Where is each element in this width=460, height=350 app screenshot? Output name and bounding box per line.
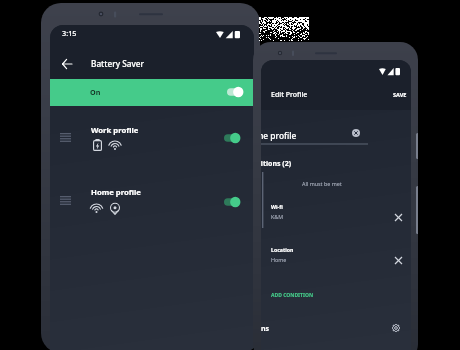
button[interactable]: Remove Wi-fi — [391, 210, 405, 224]
staticText: Actions — [261, 324, 270, 334]
staticText: Wi-fi — [271, 203, 283, 210]
button[interactable]: Back — [57, 54, 76, 73]
staticText: K&M — [271, 213, 284, 220]
button[interactable]: Wi-fi — [261, 199, 411, 223]
staticText: 3:15 — [62, 28, 77, 38]
button[interactable]: Location — [261, 242, 411, 266]
staticText: All must be met — [302, 180, 342, 187]
button[interactable]: Settings — [389, 321, 403, 335]
button[interactable]: Work profile — [50, 106, 254, 169]
staticText: Home profile — [91, 187, 141, 197]
button[interactable]: Home profile — [50, 169, 254, 232]
staticText: ADD CONDITION — [271, 292, 314, 299]
button[interactable]: Remove Location — [391, 253, 405, 267]
button[interactable]: SAVE — [393, 91, 407, 99]
staticText: Work profile — [91, 125, 139, 135]
button[interactable]: On — [50, 79, 254, 106]
staticText: SAVE — [393, 91, 407, 99]
staticText: Location — [271, 246, 294, 253]
staticText: Home — [271, 256, 287, 263]
button[interactable]: ADD CONDITION — [271, 292, 314, 299]
staticText: Edit Profile — [271, 90, 308, 100]
staticText: Conditions (2) — [261, 159, 292, 169]
staticText: Battery Saver — [91, 58, 144, 69]
button[interactable]: Clear text — [349, 126, 363, 140]
staticText: On — [90, 87, 101, 97]
staticText: Home profile — [261, 130, 297, 141]
